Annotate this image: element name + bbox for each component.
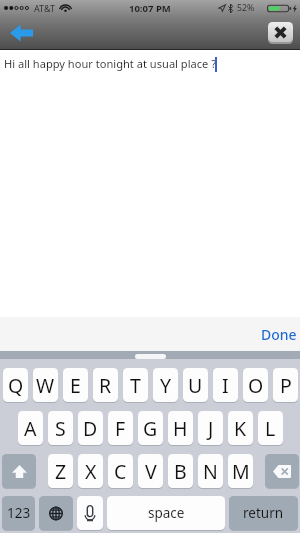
button[interactable]: R [93, 368, 118, 403]
button[interactable]: T [123, 368, 148, 403]
button[interactable]: Dictate [77, 496, 103, 531]
button[interactable]: N [198, 454, 223, 489]
staticText: Done [261, 325, 297, 344]
staticText: M [232, 458, 250, 485]
staticText: H [173, 415, 188, 442]
staticText: 123 [7, 504, 31, 522]
staticText: X [85, 458, 97, 485]
staticText: U [188, 372, 203, 399]
staticText: Q [8, 372, 24, 399]
button[interactable]: Close [268, 22, 293, 43]
staticText: L [265, 415, 276, 442]
button[interactable]: V [138, 454, 163, 489]
staticText: K [234, 415, 247, 442]
button[interactable]: W [33, 368, 58, 403]
staticText: Z [55, 458, 67, 485]
button[interactable]: X [78, 454, 103, 489]
staticText: A [24, 415, 37, 442]
staticText: B [174, 458, 187, 485]
staticText: O [248, 372, 264, 399]
staticText: I [222, 372, 229, 399]
staticText: J [208, 415, 214, 442]
staticText: N [203, 458, 218, 485]
button[interactable]: Y [153, 368, 178, 403]
button[interactable]: Done [255, 320, 300, 349]
button[interactable]: 123 [2, 496, 35, 531]
button[interactable]: L [258, 411, 283, 446]
button[interactable]: Shift [2, 454, 36, 489]
button[interactable]: J [198, 411, 223, 446]
button[interactable]: I [213, 368, 238, 403]
button[interactable]: Q [3, 368, 28, 403]
button[interactable]: return [229, 496, 298, 531]
button[interactable]: O [243, 368, 268, 403]
staticText: space [148, 504, 185, 522]
button[interactable]: M [228, 454, 253, 489]
staticText: Hi all happy hour tonight at usual place… [4, 56, 217, 71]
staticText: S [55, 415, 66, 442]
button[interactable]: B [168, 454, 193, 489]
staticText: T [130, 372, 141, 399]
staticText: R [99, 372, 112, 399]
staticText: Y [160, 372, 172, 399]
staticText: AT&T [34, 2, 55, 14]
button[interactable]: C [108, 454, 133, 489]
staticText: C [114, 458, 127, 485]
button[interactable]: G [138, 411, 163, 446]
button[interactable]: Change keyboard [39, 496, 73, 531]
staticText: D [83, 415, 98, 442]
button[interactable]: Backspace [265, 454, 299, 489]
staticText: 10:07 PM [129, 2, 171, 15]
button[interactable]: F [108, 411, 133, 446]
button[interactable]: U [183, 368, 208, 403]
staticText: G [143, 415, 158, 442]
button[interactable]: D [78, 411, 103, 446]
staticText: 52% [237, 2, 255, 14]
staticText: P [280, 372, 292, 399]
button[interactable]: Z [48, 454, 73, 489]
staticText: E [70, 372, 81, 399]
button[interactable]: S [48, 411, 73, 446]
staticText: W [36, 372, 55, 399]
staticText: V [145, 458, 157, 485]
button[interactable]: space [107, 496, 225, 531]
staticText: F [115, 415, 126, 442]
button[interactable]: E [63, 368, 88, 403]
button[interactable]: Back [9, 23, 33, 43]
button[interactable]: A [18, 411, 43, 446]
button[interactable]: P [273, 368, 298, 403]
staticText: return [243, 504, 284, 522]
button[interactable]: K [228, 411, 253, 446]
button[interactable]: H [168, 411, 193, 446]
